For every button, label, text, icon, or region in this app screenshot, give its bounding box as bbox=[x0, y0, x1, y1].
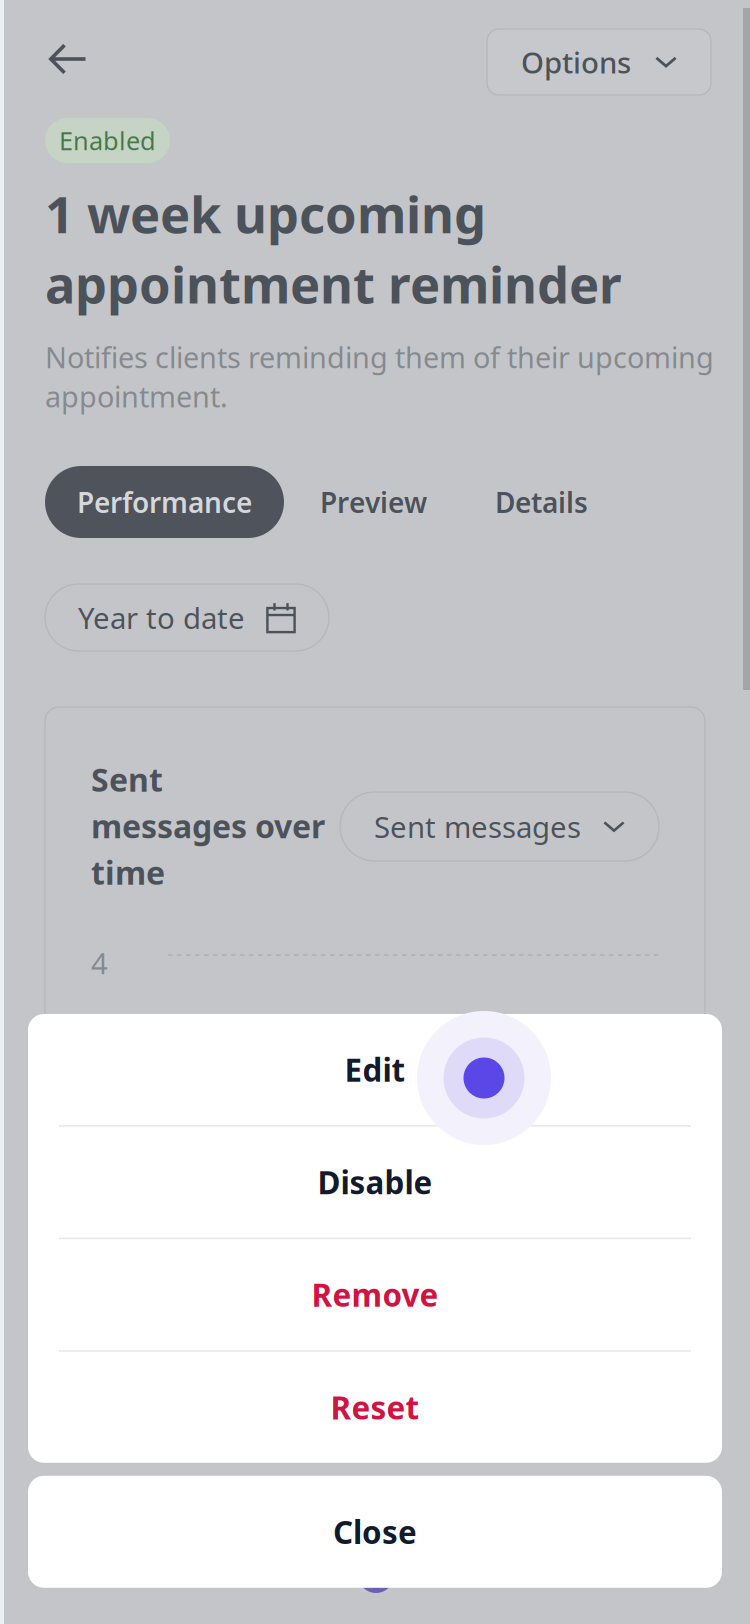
button[interactable]: Remove bbox=[28, 1239, 722, 1350]
button[interactable]: Edit bbox=[28, 1014, 722, 1125]
staticText: Close bbox=[333, 1510, 417, 1553]
staticText: Year to date bbox=[78, 598, 245, 637]
button[interactable]: Preview bbox=[284, 466, 463, 538]
button[interactable]: Year to date bbox=[45, 584, 329, 651]
staticText: Options bbox=[521, 42, 631, 81]
staticText: Sent messages over time bbox=[91, 758, 325, 893]
button[interactable]: Reset bbox=[28, 1352, 722, 1463]
button[interactable]: Enabled bbox=[45, 118, 170, 163]
button[interactable]: Back bbox=[30, 26, 106, 92]
staticText: Sent messages bbox=[374, 807, 581, 846]
staticText: Remove bbox=[311, 1273, 438, 1316]
staticText: 4 bbox=[91, 943, 108, 982]
button[interactable]: Performance bbox=[45, 466, 284, 538]
staticText: Disable bbox=[317, 1161, 432, 1203]
button[interactable]: Disable bbox=[28, 1127, 722, 1238]
staticText: Reset bbox=[330, 1386, 419, 1429]
staticText: Notifies clients reminding them of their… bbox=[45, 338, 714, 416]
staticText: Preview bbox=[320, 483, 427, 521]
staticText: Details bbox=[495, 483, 588, 521]
button[interactable]: Options bbox=[487, 29, 711, 95]
button[interactable]: Sent messages bbox=[340, 792, 659, 861]
staticText: Performance bbox=[77, 483, 252, 521]
staticText: 1 week upcoming appointment reminder bbox=[45, 180, 622, 318]
staticText: Enabled bbox=[59, 124, 156, 157]
staticText: Edit bbox=[344, 1048, 405, 1091]
button[interactable]: Details bbox=[463, 466, 620, 538]
button[interactable]: Close bbox=[28, 1476, 722, 1588]
